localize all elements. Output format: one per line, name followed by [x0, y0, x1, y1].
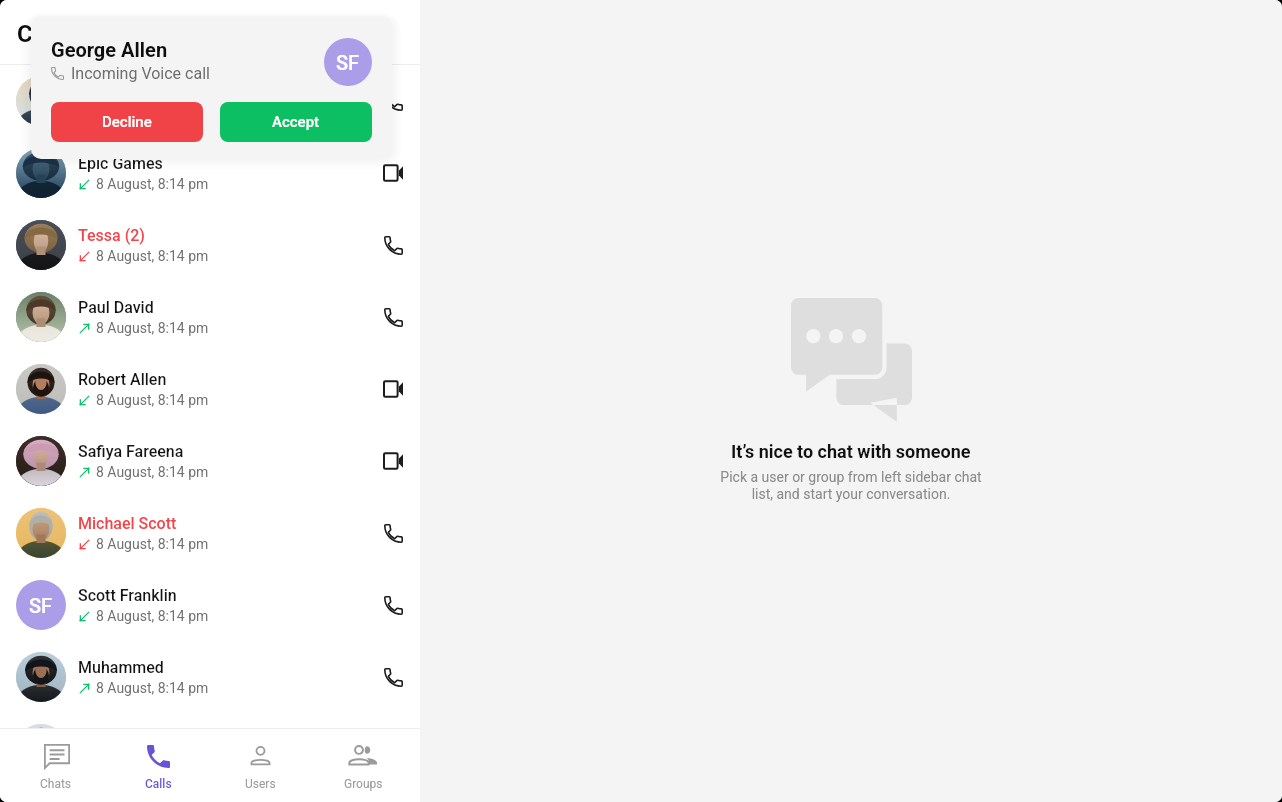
- button[interactable]: Michael Scott: [0, 497, 420, 569]
- staticText: Epic Games: [78, 154, 163, 173]
- staticText: Michael Scott: [78, 514, 177, 533]
- staticText: Pick a user or group from left sidebar c…: [701, 469, 1001, 503]
- button[interactable]: Calls: [107, 729, 209, 802]
- button[interactable]: Video call: [375, 371, 411, 407]
- button[interactable]: Voice call: [375, 227, 411, 263]
- staticText: It’s nice to chat with someone: [731, 441, 971, 462]
- staticText: SF: [29, 594, 53, 617]
- staticText: George Allen: [51, 38, 168, 61]
- button[interactable]: SF: [0, 569, 420, 641]
- staticText: 8 August, 8:14 pm: [96, 320, 209, 336]
- button[interactable]: Voice call: [375, 587, 411, 623]
- staticText: 8 August, 8:14 pm: [96, 680, 209, 696]
- staticText: 8 August, 8:14 pm: [96, 536, 209, 552]
- button[interactable]: Tessa (2): [0, 209, 420, 281]
- staticText: Chats: [40, 777, 72, 791]
- button[interactable]: Decline: [51, 102, 203, 142]
- button[interactable]: Video call: [375, 155, 411, 191]
- staticText: 8 August, 8:14 pm: [96, 608, 209, 624]
- button[interactable]: Accept: [220, 102, 372, 142]
- staticText: 8 August, 8:14 pm: [96, 176, 209, 192]
- staticText: Incoming Voice call: [71, 64, 210, 83]
- staticText: Calls: [145, 777, 172, 791]
- button[interactable]: Paul David: [0, 281, 420, 353]
- button[interactable]: Voice call: [375, 299, 411, 335]
- staticText: Calls: [17, 20, 71, 48]
- button[interactable]: Groups: [312, 729, 415, 802]
- staticText: 8 August, 8:14 pm: [96, 248, 209, 264]
- button[interactable]: Voice call: [375, 659, 411, 695]
- staticText: Muhammed: [78, 658, 164, 677]
- button[interactable]: Users: [209, 729, 312, 802]
- staticText: 8 August, 8:14 pm: [96, 464, 209, 480]
- staticText: 8 August, 8:14 pm: [96, 392, 209, 408]
- button[interactable]: Nikolai: [0, 65, 420, 137]
- button[interactable]: Robert Allen: [0, 353, 420, 425]
- button[interactable]: Voice call: [375, 515, 411, 551]
- button[interactable]: Safiya Fareena: [0, 425, 420, 497]
- staticText: Decline: [102, 113, 152, 131]
- staticText: Groups: [344, 777, 383, 791]
- button[interactable]: Chats: [5, 729, 107, 802]
- button[interactable]: Muhammed: [0, 641, 420, 713]
- staticText: SF: [336, 51, 360, 74]
- staticText: 8 August, 8:14 pm: [96, 104, 209, 120]
- button[interactable]: Video call: [375, 443, 411, 479]
- staticText: Safiya Fareena: [78, 442, 184, 461]
- staticText: Paul David: [78, 298, 154, 317]
- staticText: Tessa (2): [78, 226, 145, 245]
- button[interactable]: Voice call: [375, 83, 411, 119]
- button[interactable]: Epic Games: [0, 137, 420, 209]
- staticText: Scott Franklin: [78, 586, 177, 605]
- staticText: Users: [245, 777, 276, 791]
- staticText: Robert Allen: [78, 370, 167, 389]
- staticText: Accept: [272, 113, 320, 131]
- button[interactable]: Andrew: [0, 713, 420, 728]
